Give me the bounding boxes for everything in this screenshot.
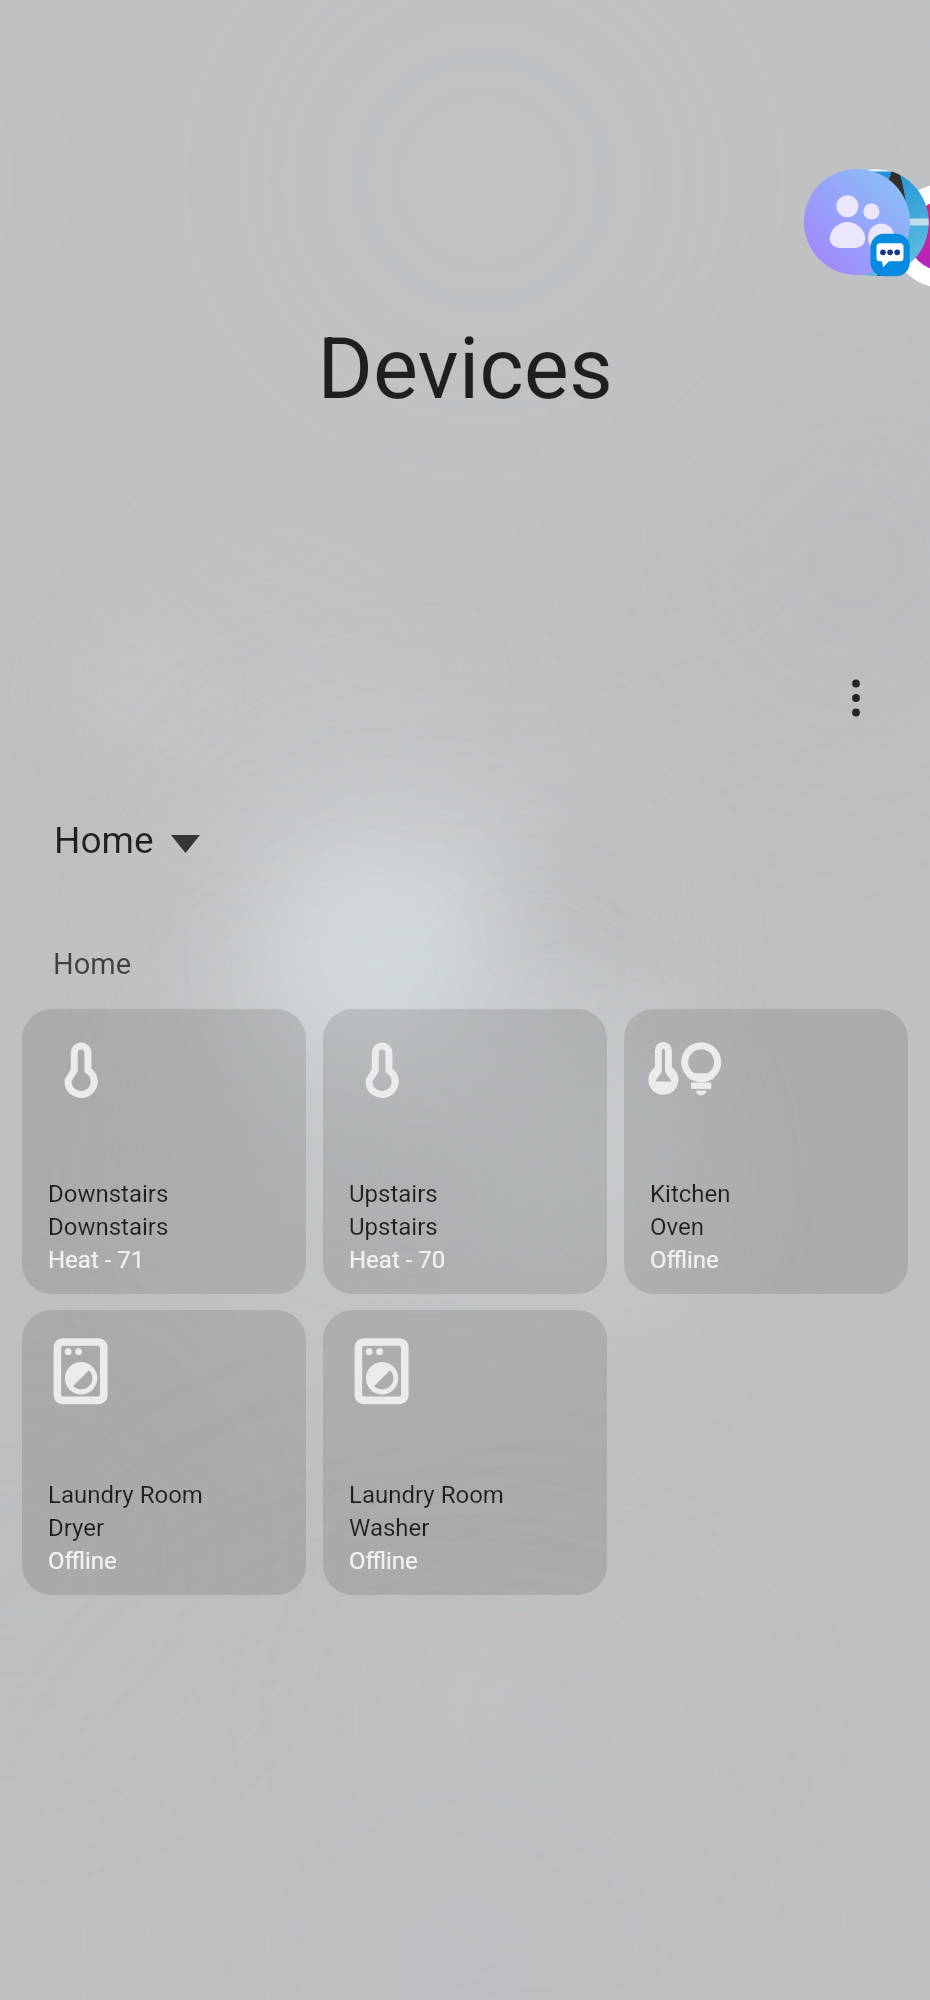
staticText: Home [53,947,132,981]
button[interactable]: App shortcuts [795,160,930,285]
button[interactable]: Kitchen [624,1009,908,1294]
staticText: Home [54,819,154,862]
staticText: Downstairs [48,1213,169,1241]
staticText: Heat - 70 [349,1246,446,1274]
staticText: Oven [650,1213,704,1241]
staticText: Offline [650,1246,719,1274]
button[interactable]: Downstairs [22,1009,306,1294]
staticText: Kitchen [650,1180,731,1208]
button[interactable]: Home [40,810,214,871]
staticText: Washer [349,1514,430,1542]
staticText: Upstairs [349,1180,438,1208]
staticText: Offline [349,1547,418,1575]
staticText: Laundry Room [349,1481,504,1509]
staticText: Offline [48,1547,117,1575]
staticText: Dryer [48,1514,105,1542]
staticText: Downstairs [48,1180,169,1208]
button[interactable]: Upstairs [323,1009,607,1294]
button[interactable]: More options [818,660,894,736]
button[interactable]: Laundry Room [22,1310,306,1595]
staticText: Devices [0,319,930,419]
staticText: Laundry Room [48,1481,203,1509]
button[interactable]: Laundry Room [323,1310,607,1595]
staticText: Heat - 71 [48,1246,145,1274]
staticText: Upstairs [349,1213,438,1241]
